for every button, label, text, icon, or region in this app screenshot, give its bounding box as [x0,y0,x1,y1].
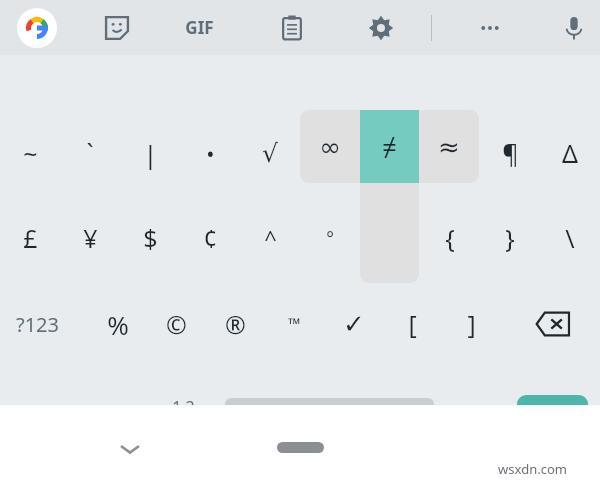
staticText: } [505,221,515,255]
button[interactable]: ?123 [0,293,75,355]
staticText: ?123 [16,311,59,338]
button[interactable]: ≈ [420,123,480,183]
staticText: > [471,403,484,433]
button[interactable]: Next page [450,380,505,455]
staticText: ∞ [320,139,341,168]
button[interactable]: Previous page [95,380,150,455]
button[interactable]: Settings [357,4,405,52]
button[interactable]: ∞ [300,123,360,183]
staticText: \ [565,221,575,255]
staticText: ^ [264,223,277,253]
button[interactable]: ¥ [60,208,120,268]
button[interactable]: √ [240,123,300,183]
staticText: ° [326,226,334,251]
button[interactable]: ~ [0,123,60,183]
button[interactable]: ` [60,123,120,183]
button[interactable]: ≠ [360,123,420,183]
staticText: © [166,307,187,341]
button[interactable]: GIF [175,13,223,41]
button[interactable]: Hide keyboard [106,425,154,473]
staticText: Δ [562,136,578,170]
button[interactable]: • [180,123,240,183]
button[interactable]: ✓ [324,293,383,355]
button[interactable]: Enter [517,395,588,441]
button[interactable]: [ [383,293,442,355]
button[interactable]: Space [225,398,434,436]
button[interactable]: { [420,208,480,268]
button[interactable]: ° [300,208,360,268]
staticText: ™ [288,313,301,335]
button[interactable]: ¶ [480,123,540,183]
staticText: ¶ [502,136,519,170]
staticText: < [116,403,129,433]
staticText: ≈ [438,132,460,162]
staticText: ≠ [382,129,397,164]
button[interactable]: Stickers [93,4,141,52]
staticText: ¥ [83,221,98,255]
staticText: √ [262,139,278,168]
button[interactable]: ≈ [419,110,479,183]
button[interactable]: More options [466,4,514,52]
button[interactable]: Home [277,442,324,453]
staticText: ¢ [203,221,218,255]
button[interactable]: © [147,293,206,355]
staticText: { [445,221,455,255]
button[interactable]: £ [0,208,60,268]
button[interactable]: | [120,123,180,183]
button[interactable]: Δ [540,123,600,183]
staticText: ` [86,136,94,170]
button[interactable]: 1 2 [152,380,214,455]
button[interactable]: ] [442,293,501,355]
staticText: ≠ [383,136,398,170]
staticText: ∞ [319,132,341,162]
button[interactable]: ™ [265,293,324,355]
staticText: ] [467,307,476,341]
button[interactable]: % [88,293,147,355]
button[interactable]: Google Search [17,8,57,48]
button[interactable]: ® [206,293,265,355]
button[interactable]: } [480,208,540,268]
button[interactable]: Voice input [550,4,598,52]
staticText: ✓ [343,309,365,339]
staticText: [ [408,307,417,341]
button[interactable]: Backspace [515,293,590,355]
button[interactable]: ¢ [180,208,240,268]
button[interactable]: Clipboard [268,4,316,52]
staticText: ABC [27,403,70,433]
button[interactable]: ABC [8,380,88,455]
staticText: 1 2 [172,396,195,418]
button[interactable]: ^ [240,208,300,268]
staticText: ~ [23,136,38,170]
staticText: | [143,136,158,171]
staticText: • [206,138,215,168]
staticText: ≈ [440,139,461,168]
button[interactable]: ≠ [360,110,419,183]
staticText: ® [225,307,246,341]
staticText: GIF [185,16,214,39]
staticText: wsxdn.com [498,460,567,478]
staticText: £ [23,221,38,255]
button[interactable]: \ [540,208,600,268]
button[interactable]: $ [120,208,180,268]
button[interactable]: ∞ [300,110,360,183]
staticText: $ [143,221,158,255]
staticText: % [107,307,129,342]
